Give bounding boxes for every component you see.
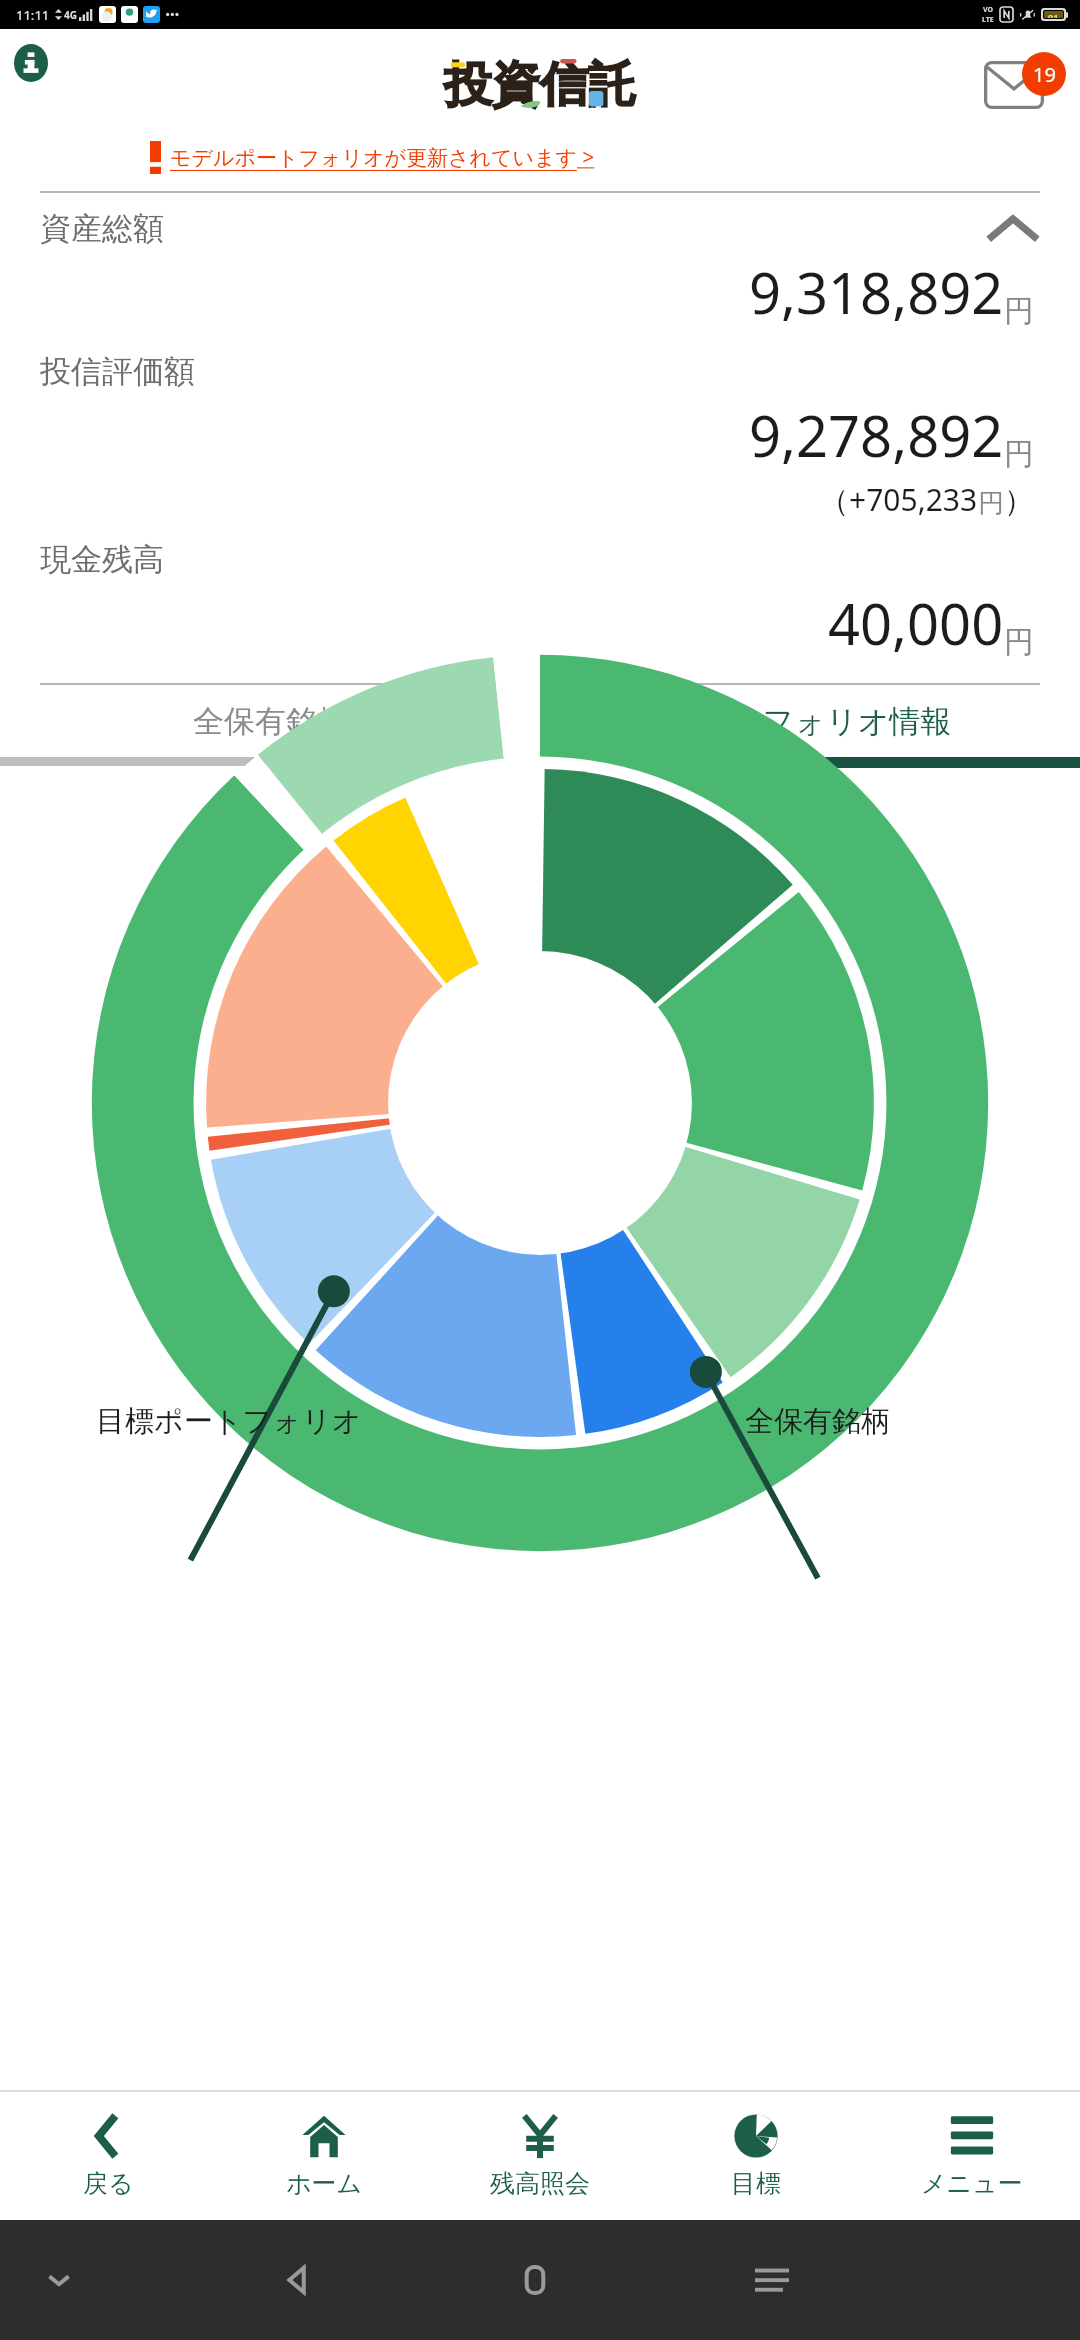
staticText: ） (1004, 482, 1034, 520)
button[interactable]: 全保有銘柄 (0, 685, 540, 757)
staticText: ホーム (286, 2168, 363, 2199)
staticText: 91 (1048, 11, 1059, 18)
staticText: 全保有銘柄 (745, 1403, 890, 1440)
staticText: 4G (64, 8, 77, 22)
staticText: ポートフォリオ情報 (668, 702, 952, 741)
button[interactable]: Back (0, 2092, 216, 2220)
staticText: 9,278,892 (749, 397, 1004, 473)
staticText: 投信評価額 (40, 352, 195, 391)
staticText: 現金残高 (40, 540, 164, 579)
staticText: 9,318,892 (749, 254, 1004, 330)
staticText: 19 (1033, 61, 1056, 88)
button[interactable]: ポートフォリオ情報 (540, 685, 1080, 757)
staticText: VO (983, 5, 994, 15)
button[interactable]: Goals (648, 2092, 864, 2220)
staticText: メニュー (921, 2168, 1023, 2199)
staticText: 残高照会 (490, 2168, 590, 2199)
button[interactable]: Messages, 19 unread (980, 50, 1066, 120)
staticText: 円 (1004, 292, 1034, 330)
staticText: 全保有銘柄 (193, 702, 348, 741)
staticText: 円 (1004, 623, 1034, 661)
staticText: 目標ポートフォリオ (96, 1403, 362, 1440)
button[interactable]: Information (7, 39, 55, 87)
staticText: 円 (1004, 435, 1034, 473)
button[interactable]: モデルポートフォリオが更新されています > (150, 134, 1040, 180)
staticText: モデルポートフォリオが更新されています > (170, 143, 595, 172)
staticText: 40,000 (828, 585, 1004, 661)
staticText: 目標 (731, 2168, 781, 2199)
staticText: （+705,233 (819, 479, 978, 520)
staticText: 戻る (83, 2168, 134, 2199)
staticText: 円 (978, 487, 1004, 520)
button[interactable]: Balance (432, 2092, 648, 2220)
staticText: 投資信託 (444, 55, 636, 115)
staticText: 資産総額 (40, 209, 164, 248)
button[interactable]: Menu (864, 2092, 1080, 2220)
button[interactable]: 資産総額 (40, 209, 1040, 248)
staticText: 11:11 (16, 6, 50, 24)
button[interactable]: Home (216, 2092, 432, 2220)
staticText: LTE (982, 15, 994, 25)
